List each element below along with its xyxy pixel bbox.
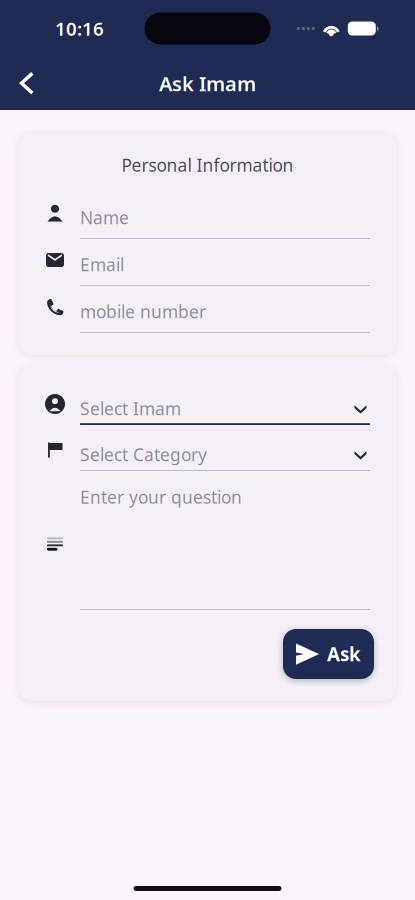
button[interactable]: Back (0, 58, 70, 108)
button[interactable]: mobile number (45, 295, 370, 333)
staticText: Ask Imam (159, 70, 256, 97)
staticText: Select Category (80, 443, 207, 466)
staticText: Ask (327, 642, 361, 666)
button[interactable]: Select Category (45, 431, 370, 471)
staticText: 10:16 (55, 16, 104, 41)
staticText: mobile number (80, 300, 206, 323)
staticText: Select Imam (80, 397, 181, 420)
button[interactable]: Name (45, 201, 370, 239)
button[interactable]: Ask (283, 629, 374, 679)
staticText: Enter your question (80, 485, 242, 508)
staticText: Email (80, 253, 124, 276)
button[interactable]: Select Imam (45, 385, 370, 425)
button[interactable]: Email (45, 248, 370, 286)
staticText: Personal Information (121, 153, 293, 176)
staticText: Name (80, 206, 129, 229)
